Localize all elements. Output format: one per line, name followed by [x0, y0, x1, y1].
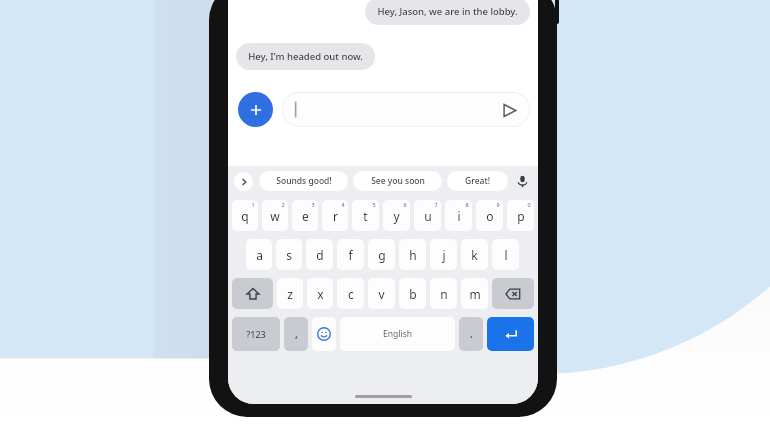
staticText: 7	[434, 201, 438, 208]
staticText: m	[469, 286, 481, 302]
button[interactable]: Voice input	[513, 172, 532, 191]
staticText: y	[393, 208, 400, 224]
button[interactable]: Send	[282, 92, 530, 127]
staticText: s	[286, 247, 292, 263]
staticText: a	[256, 247, 263, 263]
staticText: English	[383, 328, 412, 340]
button[interactable]: Emoji	[312, 317, 336, 351]
button[interactable]: Backspace	[492, 278, 534, 309]
button[interactable]: Sounds good!	[259, 171, 348, 191]
button[interactable]: w	[262, 200, 288, 231]
staticText: p	[517, 208, 525, 224]
button[interactable]: y	[383, 200, 410, 231]
button[interactable]: m	[461, 278, 488, 309]
staticText: z	[287, 286, 293, 302]
button[interactable]: More suggestions	[234, 172, 253, 191]
staticText: e	[302, 208, 309, 224]
button[interactable]: Add attachment	[238, 92, 273, 127]
staticText: Hey, Jason, we are in the lobby.	[377, 5, 518, 18]
button[interactable]: b	[399, 278, 426, 309]
staticText: ?123	[246, 328, 266, 340]
staticText: o	[486, 208, 494, 224]
button[interactable]: i	[445, 200, 472, 231]
staticText: ,	[295, 327, 298, 341]
button[interactable]: Hey, Jason, we are in the lobby.	[365, 0, 530, 25]
staticText: Sounds good!	[276, 175, 332, 187]
button[interactable]: ?123	[232, 317, 280, 351]
button[interactable]: f	[337, 239, 364, 270]
button[interactable]: s	[276, 239, 302, 270]
staticText: f	[348, 247, 353, 263]
button[interactable]: v	[368, 278, 395, 309]
button[interactable]: .	[459, 317, 483, 351]
staticText: Great!	[465, 175, 490, 187]
staticText: 0	[527, 201, 531, 208]
staticText: w	[270, 208, 280, 224]
button[interactable]: q	[232, 200, 258, 231]
button[interactable]: h	[399, 239, 426, 270]
button[interactable]: a	[246, 239, 272, 270]
staticText: j	[442, 247, 446, 263]
staticText: n	[440, 286, 448, 302]
button[interactable]: See you soon	[353, 171, 442, 191]
button[interactable]: e	[292, 200, 318, 231]
staticText: r	[333, 208, 338, 224]
staticText: 5	[372, 201, 376, 208]
button[interactable]: Send	[498, 99, 520, 121]
button[interactable]: n	[430, 278, 457, 309]
button[interactable]: p	[507, 200, 534, 231]
staticText: 9	[496, 201, 500, 208]
staticText: 6	[403, 201, 407, 208]
staticText: b	[409, 286, 417, 302]
button[interactable]: u	[414, 200, 441, 231]
button[interactable]: Hey, I'm headed out now.	[236, 43, 375, 70]
button[interactable]: English	[340, 317, 455, 351]
staticText: l	[504, 247, 508, 263]
staticText: 2	[281, 201, 285, 208]
button[interactable]: Great!	[447, 171, 508, 191]
button[interactable]: j	[430, 239, 457, 270]
staticText: d	[316, 247, 324, 263]
staticText: k	[471, 247, 478, 263]
button[interactable]: Shift	[232, 278, 273, 309]
staticText: c	[348, 286, 354, 302]
staticText: g	[378, 247, 386, 263]
staticText: h	[409, 247, 417, 263]
button[interactable]: k	[461, 239, 488, 270]
button[interactable]: l	[492, 239, 519, 270]
staticText: u	[424, 208, 432, 224]
staticText: 4	[341, 201, 345, 208]
button[interactable]: g	[368, 239, 395, 270]
staticText: i	[457, 208, 461, 224]
button[interactable]: c	[337, 278, 364, 309]
button[interactable]: z	[277, 278, 303, 309]
button[interactable]: t	[352, 200, 379, 231]
staticText: x	[317, 286, 324, 302]
button[interactable]: o	[476, 200, 503, 231]
staticText: See you soon	[371, 175, 425, 187]
staticText: 8	[465, 201, 469, 208]
staticText: Hey, I'm headed out now.	[248, 50, 363, 63]
staticText: .	[470, 327, 473, 341]
button[interactable]: Enter	[487, 317, 534, 351]
button[interactable]: x	[307, 278, 333, 309]
staticText: 3	[311, 201, 315, 208]
staticText: 1	[251, 201, 255, 208]
staticText: q	[241, 208, 249, 224]
staticText: t	[363, 208, 368, 224]
staticText: v	[378, 286, 385, 302]
button[interactable]: ,	[284, 317, 308, 351]
button[interactable]: d	[306, 239, 333, 270]
button[interactable]: r	[322, 200, 348, 231]
